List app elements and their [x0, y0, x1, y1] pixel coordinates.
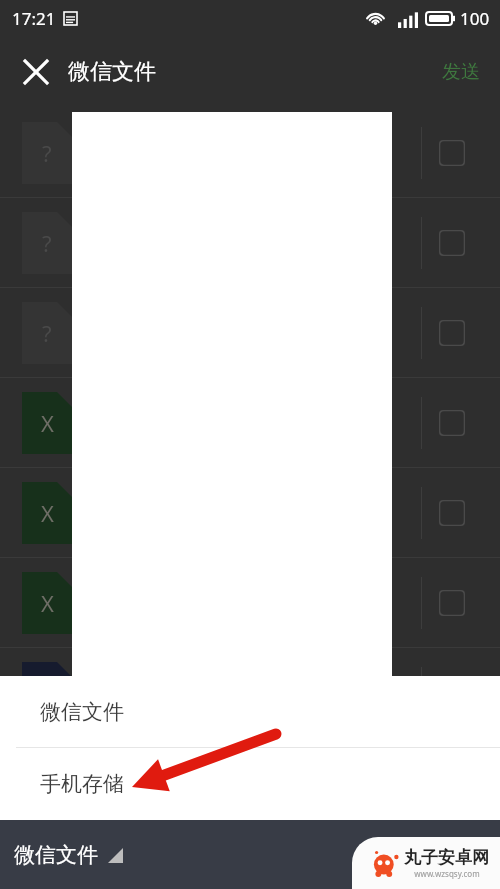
staticText: 手机存储	[40, 771, 124, 797]
staticText: 丸子安卓网	[404, 847, 489, 868]
button[interactable]: 微信文件	[10, 836, 127, 874]
staticText: 微信文件	[14, 842, 98, 868]
button[interactable]: Close	[12, 48, 60, 96]
button[interactable]: 发送	[430, 52, 492, 92]
button[interactable]: Select file	[430, 221, 474, 265]
staticText: 发送	[442, 60, 480, 84]
staticText: X	[41, 408, 54, 438]
button[interactable]: Select file	[430, 671, 474, 715]
staticText: www.wzsqsy.com	[414, 868, 480, 879]
staticText: X	[41, 498, 54, 528]
button[interactable]: Select file	[430, 311, 474, 355]
staticText: ?	[42, 138, 52, 168]
staticText: 17:21	[12, 7, 56, 30]
staticText: 微信文件	[68, 58, 156, 86]
button[interactable]: Select file	[430, 491, 474, 535]
staticText: W	[37, 678, 58, 708]
button[interactable]: Select file	[430, 581, 474, 625]
button[interactable]: 微信文件	[0, 676, 500, 747]
button[interactable]: Select file	[430, 131, 474, 175]
staticText: 100	[460, 7, 490, 30]
staticText: ?	[42, 318, 52, 348]
button[interactable]: 手机存储	[0, 748, 500, 819]
staticText: 微信文件	[40, 699, 124, 725]
staticText: W	[37, 768, 58, 798]
staticText: ?	[42, 228, 52, 258]
staticText: X	[41, 588, 54, 618]
button[interactable]: Select file	[430, 401, 474, 445]
